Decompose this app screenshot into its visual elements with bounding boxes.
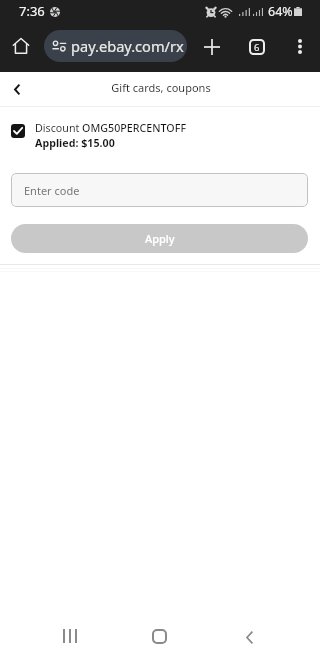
staticText: 64%: [268, 3, 293, 20]
button[interactable]: More options: [283, 30, 316, 63]
button[interactable]: New tab: [195, 30, 228, 63]
button[interactable]: Back: [5, 77, 29, 101]
staticText: Enter code: [24, 183, 80, 198]
button[interactable]: Back: [227, 615, 271, 658]
button[interactable]: Apply: [11, 224, 308, 253]
button[interactable]: Enter code: [11, 173, 308, 207]
staticText: 6: [254, 41, 260, 54]
staticText: Applied: $15.00: [35, 136, 115, 151]
button[interactable]: Home: [137, 614, 181, 658]
staticText: 7:36: [19, 2, 45, 20]
staticText: Gift cards, coupons: [111, 80, 211, 95]
button[interactable]: Recent apps: [48, 614, 92, 658]
button[interactable]: Home: [5, 30, 37, 62]
staticText: Apply: [145, 231, 175, 246]
staticText: pay.ebay.com/rx: [71, 36, 184, 56]
button[interactable]: Switch tabs: [240, 30, 273, 63]
staticText: Discount OMG50PERCENTOFF: [35, 121, 187, 136]
button[interactable]: Discount applied: [11, 124, 25, 138]
button[interactable]: pay.ebay.com/rx: [44, 30, 187, 62]
